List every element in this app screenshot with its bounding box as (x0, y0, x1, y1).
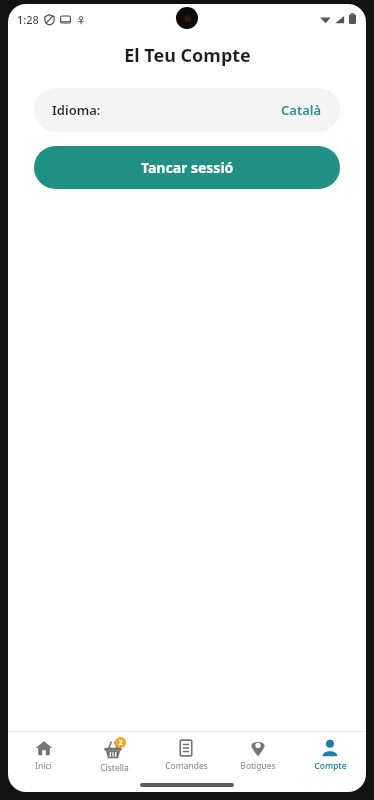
staticText: Tancar sessió (141, 158, 234, 177)
staticText: Cistella (100, 762, 129, 774)
button[interactable]: Compte (294, 732, 366, 778)
button[interactable]: Idioma: (34, 88, 340, 132)
staticText: Botigues (240, 760, 276, 772)
button[interactable]: Inici (8, 732, 79, 778)
button[interactable]: Cistella (79, 732, 150, 778)
staticText: Comandes (165, 760, 208, 772)
staticText: Inici (35, 760, 52, 772)
staticText: El Teu Compte (124, 43, 251, 68)
button[interactable]: Tancar sessió (34, 146, 340, 189)
staticText: 2 (118, 738, 123, 748)
button[interactable]: Comandes (150, 732, 222, 778)
staticText: Català (281, 101, 322, 119)
staticText: Compte (314, 760, 347, 772)
button[interactable]: Botigues (222, 732, 294, 778)
staticText: Idioma: (52, 101, 101, 119)
staticText: 1:28 (17, 12, 39, 27)
